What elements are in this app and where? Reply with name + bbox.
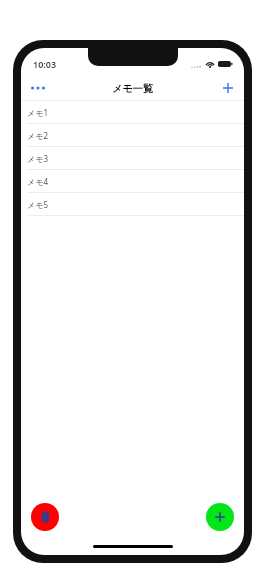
button[interactable]: メモ4: [21, 170, 244, 192]
button[interactable]: More options: [21, 76, 55, 100]
button[interactable]: メモ5: [21, 193, 244, 215]
staticText: メモ一覧: [112, 82, 153, 95]
staticText: メモ1: [27, 107, 48, 118]
staticText: 10:03: [33, 58, 57, 70]
button[interactable]: メモ3: [21, 147, 244, 169]
staticText: メモ2: [27, 130, 48, 141]
button[interactable]: Delete: [31, 503, 59, 531]
staticText: メモ5: [27, 199, 48, 210]
staticText: メモ3: [27, 153, 48, 164]
staticText: メモ4: [27, 176, 48, 187]
button[interactable]: メモ1: [21, 101, 244, 123]
button[interactable]: Add memo: [212, 76, 244, 100]
button[interactable]: メモ2: [21, 124, 244, 146]
button[interactable]: Add: [206, 503, 234, 531]
